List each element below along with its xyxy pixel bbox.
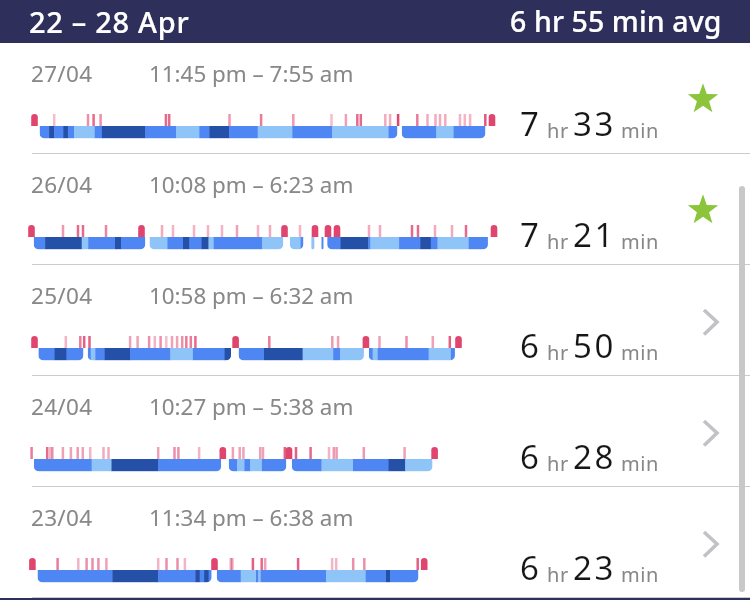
staticText: min xyxy=(621,561,660,588)
staticText: 10:08 pm – 6:23 am xyxy=(149,169,354,200)
other: Sleep goal met xyxy=(687,193,719,225)
staticText: 6 xyxy=(520,323,542,368)
staticText: 22 – 28 Apr xyxy=(29,2,190,41)
other: Show sleep details xyxy=(700,417,724,449)
staticText: min xyxy=(621,228,660,255)
staticText: hr xyxy=(547,228,569,255)
staticText: 7 xyxy=(520,101,542,146)
staticText: 11:45 pm – 7:55 am xyxy=(149,58,354,89)
button[interactable]: 23/04 xyxy=(0,487,750,598)
staticText: hr xyxy=(547,117,569,144)
staticText: 25/04 xyxy=(31,280,93,311)
staticText: 10:58 pm – 6:32 am xyxy=(149,280,354,311)
staticText: 6 xyxy=(520,545,542,590)
staticText: 28 xyxy=(573,434,616,479)
other: Sleep goal met xyxy=(687,82,719,114)
button[interactable]: 24/04 xyxy=(0,376,750,487)
staticText: 50 xyxy=(573,323,616,368)
staticText: min xyxy=(621,117,660,144)
staticText: 24/04 xyxy=(31,391,93,422)
staticText: min xyxy=(621,450,660,477)
staticText: 11:34 pm – 6:38 am xyxy=(149,502,354,533)
staticText: hr xyxy=(547,339,569,366)
staticText: 10:27 pm – 5:38 am xyxy=(149,391,354,422)
staticText: 21 xyxy=(573,212,616,257)
staticText: 26/04 xyxy=(31,169,93,200)
button[interactable]: 26/04 xyxy=(0,154,750,265)
staticText: 23/04 xyxy=(31,502,93,533)
staticText: min xyxy=(621,339,660,366)
staticText: 33 xyxy=(573,101,616,146)
staticText: 23 xyxy=(573,545,616,590)
other: Show sleep details xyxy=(700,528,724,560)
staticText: 27/04 xyxy=(31,58,93,89)
staticText: hr xyxy=(547,450,569,477)
staticText: hr xyxy=(547,561,569,588)
button[interactable]: 27/04 xyxy=(0,43,750,154)
other: Show sleep details xyxy=(700,306,724,338)
button[interactable]: 25/04 xyxy=(0,265,750,376)
staticText: 7 xyxy=(520,212,542,257)
staticText: 6 hr 55 min avg xyxy=(510,2,722,41)
staticText: 6 xyxy=(520,434,542,479)
